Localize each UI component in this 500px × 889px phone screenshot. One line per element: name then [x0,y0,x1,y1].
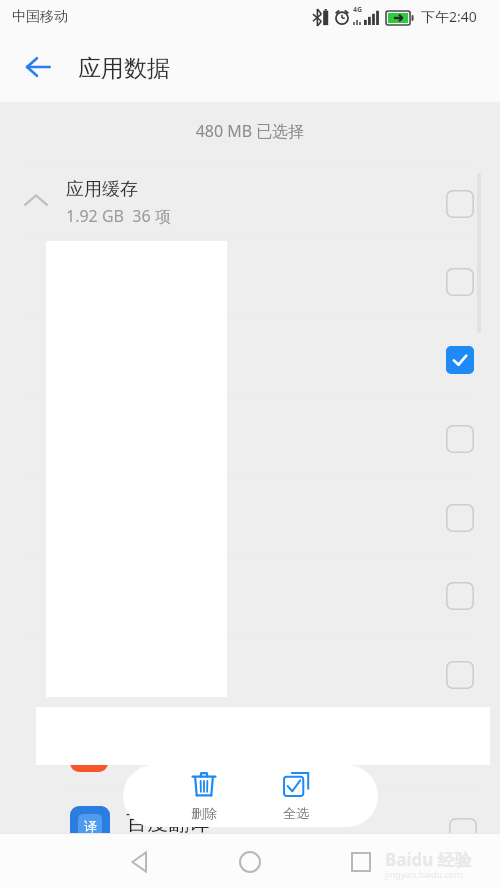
button[interactable]: 未选中 [437,806,489,858]
staticText: 下午2:40 [421,7,477,26]
staticText: 译 [84,818,97,834]
button[interactable]: 未选中 [434,413,486,465]
button[interactable]: 返回 [16,45,60,89]
button[interactable]: 全选 [251,765,341,827]
staticText: 中国移动 [12,8,68,26]
staticText: 应用数据 [78,54,170,83]
button[interactable]: 未选中 [434,570,486,622]
staticText: 4G [353,5,363,15]
button[interactable]: 删除 [159,765,249,827]
button[interactable]: 返回 [109,834,169,889]
staticText: 应用缓存 [66,178,138,201]
staticText: 百度翻译 [126,810,210,836]
staticText: 480 MB 已选择 [0,120,500,889]
button[interactable]: 未选中 [434,649,486,701]
button[interactable]: 未选中 [434,178,486,230]
button[interactable]: 已选中 [434,334,486,386]
button[interactable]: 最近任务 [331,834,391,889]
button[interactable]: 未选中 [434,256,486,308]
button[interactable]: 未选中 [434,492,486,544]
staticText: jingyan.baidu.com [385,868,463,880]
button[interactable]: 主屏幕 [220,834,280,889]
button[interactable] [0,161,500,889]
staticText: 全选 [283,805,309,821]
staticText: 1.92 GB 36 项 [66,205,171,227]
staticText: Baidu 经验 [385,848,472,871]
staticText: 删除 [191,805,217,821]
